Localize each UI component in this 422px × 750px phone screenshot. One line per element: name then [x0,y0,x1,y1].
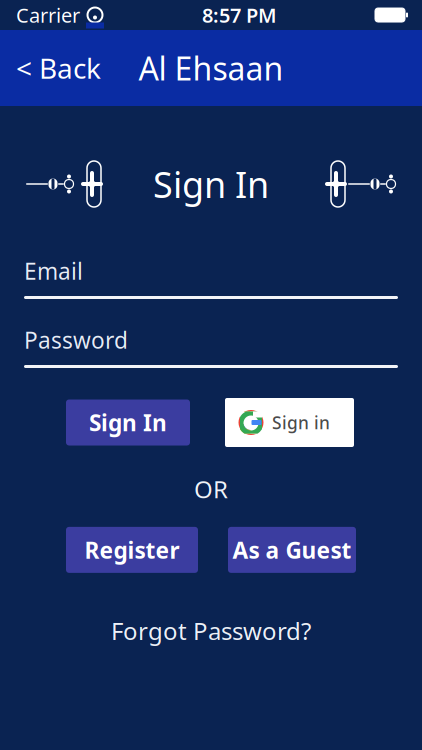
staticText: Password [24,325,128,355]
staticText: OR [194,473,228,505]
button[interactable]: < Back [0,46,113,90]
staticText: Sign in [272,411,330,434]
staticText: Al Ehsaan [138,47,283,89]
button[interactable]: Register [66,527,198,573]
staticText: Sign In [89,407,167,437]
button[interactable]: Forgot Password? [99,607,323,655]
staticText: Carrier [16,2,80,28]
staticText: As a Guest [232,535,351,565]
button[interactable]: As a Guest [228,527,356,573]
staticText: Email [24,256,83,286]
staticText: Sign In [153,160,269,208]
staticText: Register [84,535,179,565]
staticText: Forgot Password? [111,615,311,647]
staticText: 8:57 PM [202,2,277,28]
button[interactable]: Sign In [66,399,190,445]
button[interactable]: Sign in [225,398,354,447]
staticText: < Back [16,49,101,87]
